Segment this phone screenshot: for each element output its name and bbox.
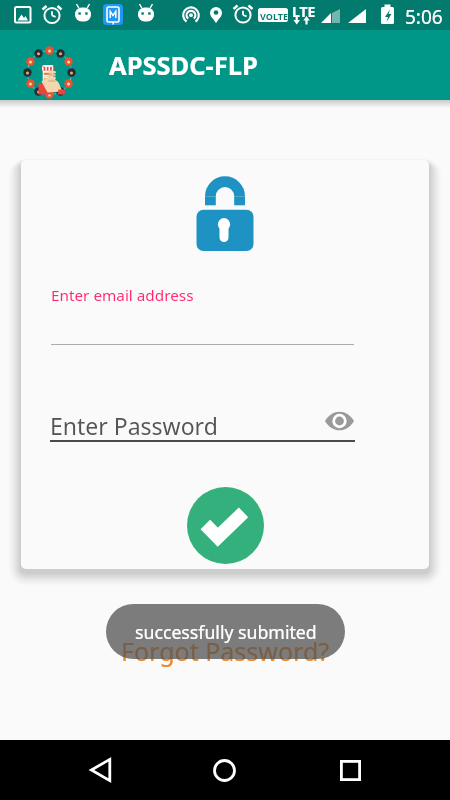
button[interactable]: Recents (328, 748, 372, 792)
staticText: Forgot Password? (121, 634, 330, 668)
button[interactable]: Show password (320, 402, 358, 440)
staticText: Enter Password (50, 410, 218, 441)
staticText: successfully submited (135, 620, 317, 644)
staticText: APSSDC-FLP (109, 48, 258, 83)
staticText: Enter email address (51, 285, 194, 306)
button[interactable]: Submit (187, 487, 264, 564)
button[interactable]: Home (202, 748, 246, 792)
button[interactable]: Back (78, 748, 122, 792)
staticText: 5:06 (405, 4, 443, 30)
staticText: VOLTE (260, 10, 288, 22)
staticText: LTE (292, 2, 316, 21)
button[interactable]: Forgot Password? (0, 634, 450, 668)
